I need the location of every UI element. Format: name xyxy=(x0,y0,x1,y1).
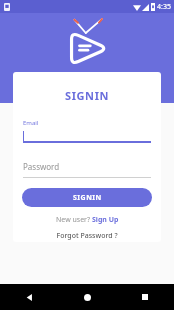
staticText: Password xyxy=(23,161,60,172)
button[interactable]: Recent apps xyxy=(116,284,174,310)
staticText: 4:35 xyxy=(157,2,171,12)
button[interactable]: Forgot Password ? xyxy=(52,230,122,242)
button[interactable]: New user? xyxy=(52,214,123,226)
staticText: Forgot Password ? xyxy=(56,231,118,241)
staticText: Sign Up xyxy=(92,215,119,225)
staticText: SIGNIN xyxy=(65,88,110,103)
staticText: SIGNIN xyxy=(73,193,102,203)
button[interactable]: SIGNIN xyxy=(22,188,152,207)
button[interactable]: Back xyxy=(0,284,58,310)
button[interactable]: Password xyxy=(23,161,151,178)
button[interactable]: Home xyxy=(58,284,116,310)
staticText: Email xyxy=(23,119,39,127)
button[interactable]: Email xyxy=(23,119,151,143)
staticText: New user? xyxy=(56,215,92,225)
